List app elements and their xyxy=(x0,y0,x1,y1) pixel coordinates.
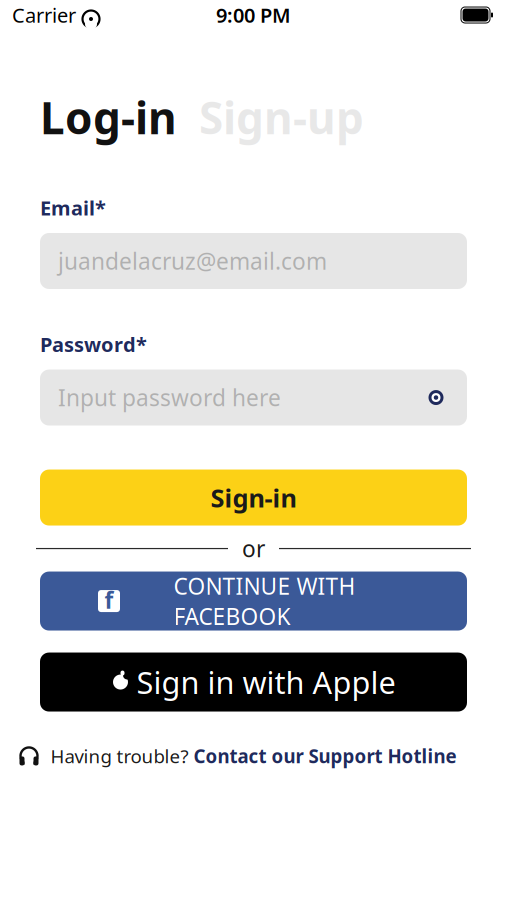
staticText: Carrier xyxy=(12,2,76,28)
button[interactable]: Sign-up xyxy=(199,88,364,146)
staticText: Log-in xyxy=(40,88,177,146)
staticText: Sign-up xyxy=(199,88,364,146)
staticText: Email* xyxy=(40,194,106,221)
staticText: Sign in with Apple xyxy=(136,662,395,702)
staticText: f xyxy=(104,585,113,615)
staticText: juandelacruz@email.com xyxy=(58,246,327,276)
button[interactable]: Having trouble? xyxy=(0,743,507,768)
staticText: Sign-in xyxy=(210,481,296,514)
button[interactable]: Log-in xyxy=(40,88,177,146)
staticText: Input password here xyxy=(58,382,281,413)
button[interactable]: Sign-in xyxy=(40,469,467,525)
button[interactable]: Sign in with Apple xyxy=(40,652,467,711)
button[interactable]: juandelacruz@email.com xyxy=(40,233,467,289)
staticText: Password* xyxy=(40,331,147,358)
button[interactable]: Input password here xyxy=(40,369,467,425)
staticText: 9:00 PM xyxy=(216,2,291,28)
staticText: CONTINUE WITH FACEBOOK xyxy=(173,571,355,631)
staticText xyxy=(76,2,81,28)
staticText: Having trouble? xyxy=(50,743,193,768)
staticText: Contact our Support Hotline xyxy=(193,743,456,768)
staticText: or xyxy=(242,533,265,564)
button[interactable]: f xyxy=(40,571,467,630)
